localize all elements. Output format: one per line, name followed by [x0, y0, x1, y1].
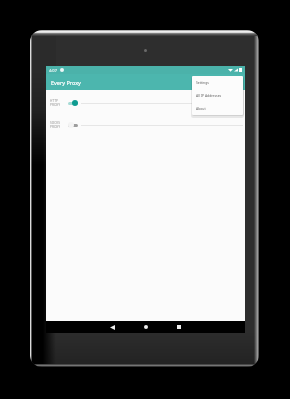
- staticText: PROXY: [50, 103, 61, 107]
- staticText: HTTP: [50, 99, 58, 103]
- button[interactable]: All IP Addresses: [192, 89, 243, 102]
- button[interactable]: About: [192, 102, 243, 115]
- button[interactable]: Settings: [192, 76, 243, 89]
- staticText: SOCKS: [50, 121, 60, 125]
- staticText: PROXY: [50, 125, 61, 129]
- button[interactable]: Home: [142, 323, 150, 331]
- button[interactable]: Recent apps: [175, 323, 183, 331]
- staticText: All IP Addresses: [196, 93, 222, 98]
- staticText: Settings: [196, 80, 209, 85]
- button[interactable]: Back: [108, 323, 116, 331]
- button[interactable]: SOCKS: [46, 114, 245, 136]
- staticText: Every Proxy: [51, 79, 81, 86]
- staticText: 4:07: [49, 68, 57, 73]
- staticText: About: [196, 106, 206, 111]
- button[interactable]: HTTP: [46, 92, 245, 114]
